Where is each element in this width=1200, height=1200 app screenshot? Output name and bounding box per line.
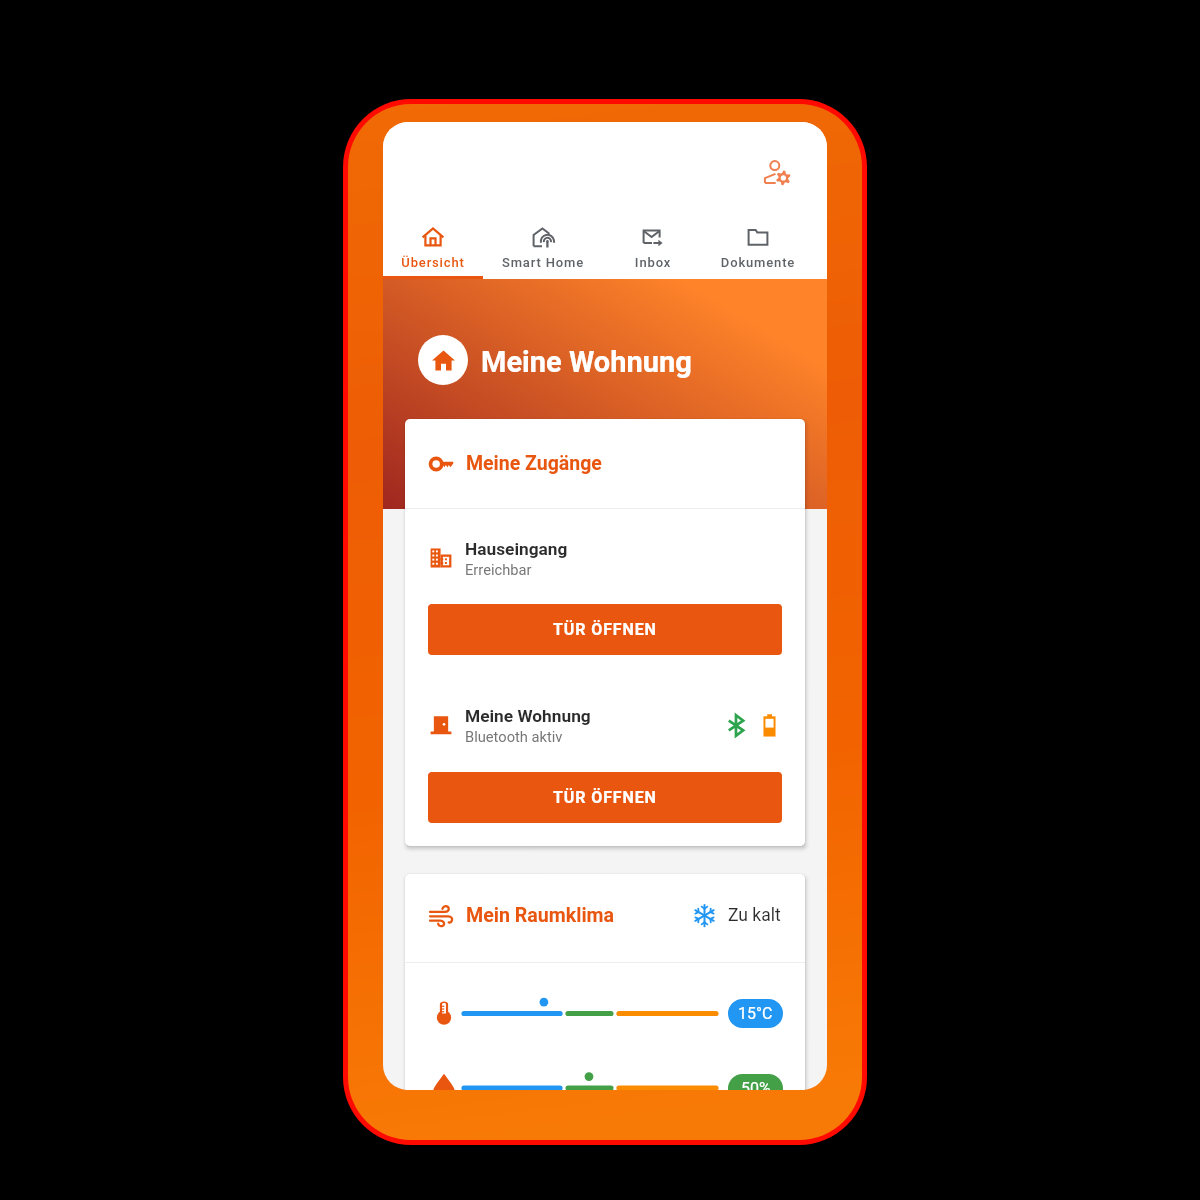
staticText: TÜR ÖFFNEN <box>553 620 657 639</box>
staticText: Inbox <box>603 255 703 270</box>
staticText: Smart Home <box>483 255 603 270</box>
staticText: 50% <box>741 1079 771 1090</box>
button[interactable]: Übersicht <box>383 222 483 279</box>
staticText: Erreichbar <box>465 561 532 578</box>
button[interactable]: TÜR ÖFFNEN <box>428 604 782 655</box>
button[interactable]: TÜR ÖFFNEN <box>428 772 782 823</box>
staticText: Meine Zugänge <box>466 452 602 475</box>
staticText: Bluetooth aktiv <box>465 728 563 745</box>
staticText: Dokumente <box>703 255 813 270</box>
staticText: Mein Raumklima <box>466 904 615 927</box>
button[interactable]: Smart Home <box>483 222 603 279</box>
staticText: TÜR ÖFFNEN <box>553 788 657 807</box>
button[interactable]: Dokumente <box>703 222 813 279</box>
staticText: Zu kalt <box>728 905 781 926</box>
staticText: Meine Wohnung <box>481 345 692 379</box>
button[interactable]: Account settings <box>764 159 791 186</box>
button[interactable]: Inbox <box>603 222 703 279</box>
staticText: Meine Wohnung <box>465 706 591 726</box>
staticText: Übersicht <box>383 255 483 270</box>
staticText: 15°C <box>738 1004 773 1023</box>
staticText: Hauseingang <box>465 539 568 559</box>
